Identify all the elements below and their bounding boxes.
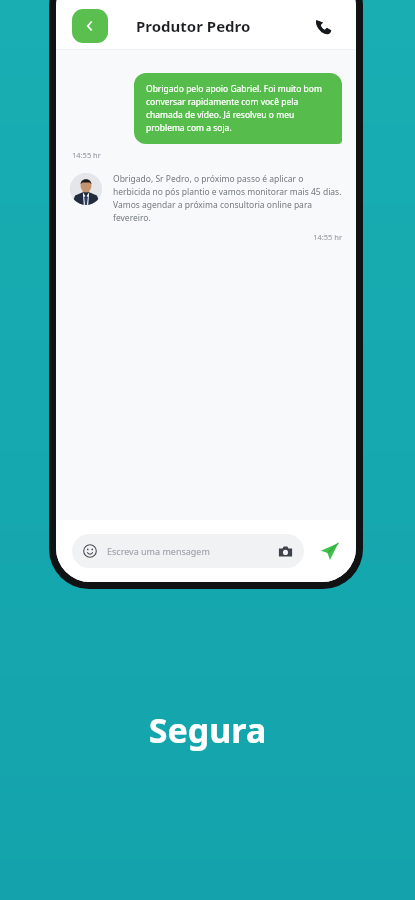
button[interactable]: Escreva uma mensagem <box>72 534 304 568</box>
button[interactable]: Enviar <box>316 538 342 564</box>
staticText: Obrigado, Sr Pedro, o próximo passo é ap… <box>113 173 342 224</box>
button[interactable]: Ligar <box>308 11 338 41</box>
staticText: Produtor Pedro <box>136 16 251 36</box>
staticText: Segura <box>0 707 415 753</box>
staticText: 14:55 hr <box>113 232 342 242</box>
staticText: 14:55 hr <box>72 150 101 160</box>
staticText: Obrigado pelo apoio Gabriel. Foi muito b… <box>146 83 330 134</box>
staticText: Escreva uma mensagem <box>107 545 278 557</box>
button[interactable]: Obrigado pelo apoio Gabriel. Foi muito b… <box>134 73 342 144</box>
button[interactable]: Voltar <box>72 9 108 43</box>
